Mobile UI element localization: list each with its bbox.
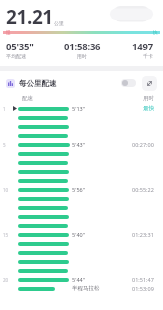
button[interactable] bbox=[0, 149, 163, 158]
staticText: 20 bbox=[3, 277, 9, 283]
button[interactable] bbox=[0, 158, 163, 167]
button[interactable]: 15 bbox=[0, 230, 163, 239]
staticText: 1497 bbox=[132, 40, 153, 53]
button[interactable]: 1 bbox=[0, 104, 163, 113]
button[interactable] bbox=[0, 221, 163, 230]
staticText: 01:53:09 bbox=[132, 285, 154, 292]
staticText: 快 bbox=[153, 30, 158, 36]
button[interactable] bbox=[0, 266, 163, 275]
button[interactable] bbox=[0, 248, 163, 257]
button[interactable]: 5 bbox=[0, 140, 163, 149]
button[interactable]: 20 bbox=[0, 275, 163, 284]
button[interactable]: Expand chart bbox=[142, 76, 157, 91]
staticText: 5'56" bbox=[72, 186, 85, 193]
staticText: 01:58:36 bbox=[64, 40, 101, 53]
staticText: 01:51:47 bbox=[132, 276, 154, 283]
staticText: 配速 bbox=[22, 95, 33, 102]
staticText: 平均配速 bbox=[6, 53, 26, 59]
staticText: 5'44" bbox=[72, 276, 85, 283]
button[interactable] bbox=[0, 257, 163, 266]
staticText: 最快 bbox=[143, 105, 154, 112]
staticText: 慢 bbox=[6, 30, 11, 36]
staticText: 公里 bbox=[54, 20, 64, 26]
button[interactable]: 半程马拉松 bbox=[0, 284, 163, 293]
staticText: 21.21 bbox=[6, 4, 53, 28]
staticText: 1 bbox=[3, 106, 6, 112]
button[interactable]: Toggle bbox=[121, 79, 136, 87]
button[interactable] bbox=[0, 131, 163, 140]
staticText: 每公里配速 bbox=[19, 79, 57, 88]
staticText: 10 bbox=[3, 187, 9, 193]
staticText: 5'43" bbox=[72, 141, 85, 148]
staticText: 千卡 bbox=[143, 53, 153, 59]
staticText: 5 bbox=[3, 142, 6, 148]
button[interactable] bbox=[0, 194, 163, 203]
staticText: 05'35" bbox=[6, 40, 34, 53]
staticText: 5'40" bbox=[72, 231, 85, 238]
staticText: 5'13" bbox=[72, 105, 85, 112]
staticText: 00:55:22 bbox=[132, 186, 154, 193]
button[interactable] bbox=[0, 212, 163, 221]
button[interactable] bbox=[0, 239, 163, 248]
staticText: 半程马拉松 bbox=[72, 285, 100, 292]
staticText: 01:23:31 bbox=[132, 231, 154, 238]
staticText: 15 bbox=[3, 232, 9, 238]
button[interactable] bbox=[0, 176, 163, 185]
button[interactable] bbox=[0, 122, 163, 131]
button[interactable] bbox=[0, 203, 163, 212]
button[interactable]: 10 bbox=[0, 185, 163, 194]
button[interactable] bbox=[0, 167, 163, 176]
button[interactable] bbox=[0, 113, 163, 122]
staticText: 用时 bbox=[77, 53, 87, 59]
staticText: 用时 bbox=[143, 95, 154, 102]
staticText: 00:27:00 bbox=[132, 141, 154, 148]
